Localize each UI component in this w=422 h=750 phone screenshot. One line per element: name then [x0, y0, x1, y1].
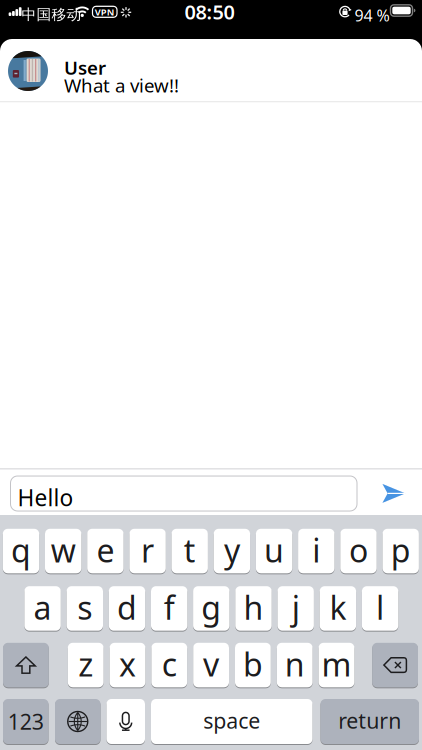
staticText: Hello	[17, 482, 73, 513]
button[interactable]: Message field: Hello	[10, 476, 357, 511]
staticText: return	[338, 706, 401, 735]
staticText: j	[292, 586, 300, 629]
button[interactable]: m	[319, 643, 354, 687]
staticText: 94 %	[354, 5, 389, 26]
button[interactable]: a	[24, 586, 61, 631]
staticText: h	[243, 586, 263, 629]
button[interactable]: z	[68, 643, 104, 687]
staticText: d	[117, 586, 137, 629]
staticText: v	[203, 643, 219, 685]
button[interactable]: y	[214, 529, 250, 573]
button[interactable]: u	[256, 529, 292, 573]
staticText: space	[203, 706, 260, 735]
staticText: n	[285, 643, 305, 685]
staticText: c	[162, 643, 177, 685]
staticText: o	[349, 529, 368, 571]
button[interactable]: r	[129, 529, 166, 573]
button[interactable]: return	[320, 699, 419, 744]
button[interactable]: s	[67, 586, 103, 631]
staticText: r	[141, 529, 154, 571]
staticText: a	[34, 586, 52, 629]
button[interactable]: i	[298, 529, 334, 573]
staticText: i	[312, 529, 320, 571]
button[interactable]: k	[320, 586, 356, 631]
staticText: 123	[8, 707, 44, 736]
button[interactable]: v	[193, 643, 229, 687]
button[interactable]: Next keyboard	[55, 699, 100, 744]
button[interactable]: q	[3, 529, 39, 573]
button[interactable]: d	[109, 586, 145, 631]
button[interactable]: x	[110, 643, 145, 687]
button[interactable]: Send	[376, 476, 412, 511]
staticText: User	[64, 55, 106, 80]
button[interactable]: g	[193, 586, 229, 631]
staticText: l	[376, 586, 384, 629]
staticText: g	[201, 586, 221, 629]
button[interactable]: f	[151, 586, 187, 631]
staticText: f	[164, 586, 175, 629]
staticText: t	[184, 529, 196, 571]
staticText: q	[11, 529, 31, 571]
staticText: VPN	[95, 6, 115, 18]
staticText: k	[329, 586, 346, 629]
button[interactable]: b	[235, 643, 271, 687]
button[interactable]: n	[277, 643, 313, 687]
button[interactable]: e	[87, 529, 124, 573]
staticText: e	[96, 529, 114, 571]
button[interactable]: User: What a view!!	[0, 39, 422, 101]
button[interactable]: 123	[3, 699, 48, 744]
button[interactable]: c	[151, 643, 187, 687]
staticText: z	[78, 643, 93, 685]
staticText: 中国移动	[21, 6, 81, 24]
staticText: m	[321, 643, 351, 685]
staticText: s	[77, 586, 92, 629]
staticText: w	[51, 529, 76, 571]
staticText: u	[264, 529, 284, 571]
button[interactable]: t	[171, 529, 208, 573]
staticText: What a view!!	[64, 73, 179, 98]
button[interactable]: h	[235, 586, 272, 631]
button[interactable]: Delete	[372, 643, 418, 687]
button[interactable]: space	[151, 699, 312, 744]
staticText: y	[224, 529, 240, 571]
staticText: x	[119, 643, 136, 685]
staticText: b	[243, 643, 263, 685]
button[interactable]: Shift	[3, 643, 49, 687]
button[interactable]: p	[382, 529, 419, 573]
button[interactable]: Dictate	[106, 699, 145, 744]
button[interactable]: w	[45, 529, 81, 573]
button[interactable]: j	[277, 586, 314, 631]
staticText: 08:50	[184, 0, 234, 25]
button[interactable]: l	[362, 586, 398, 631]
staticText: p	[391, 529, 411, 571]
button[interactable]: o	[340, 529, 377, 573]
